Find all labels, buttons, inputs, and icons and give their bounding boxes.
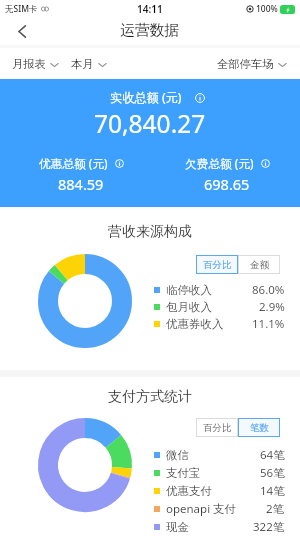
- staticText: 包月收入: [166, 300, 212, 314]
- staticText: 2.9%: [259, 299, 285, 315]
- staticText: 70,840.27: [94, 107, 206, 140]
- button[interactable]: 百分比: [196, 418, 238, 437]
- staticText: 14笔: [260, 483, 285, 499]
- button[interactable]: 包月收入: [154, 298, 285, 315]
- button[interactable]: 优惠券收入: [154, 315, 285, 332]
- staticText: 百分比: [203, 259, 232, 271]
- button[interactable]: 本月: [71, 51, 107, 77]
- staticText: 本月: [71, 57, 94, 71]
- button[interactable]: 金额: [238, 255, 280, 274]
- button[interactable]: 优惠支付: [154, 482, 285, 500]
- staticText: 百分比: [203, 422, 232, 434]
- button[interactable]: 微信: [154, 446, 285, 464]
- staticText: 现金: [166, 520, 189, 534]
- button[interactable]: 返回: [0, 17, 44, 45]
- staticText: 欠费总额 (元): [185, 155, 254, 171]
- staticText: 优惠券收入: [166, 317, 224, 331]
- button[interactable]: 月报表: [12, 51, 59, 77]
- button[interactable]: 百分比: [196, 255, 238, 274]
- button[interactable]: 临停收入: [154, 281, 285, 298]
- staticText: 100%: [256, 3, 278, 15]
- staticText: 2笔: [266, 501, 285, 517]
- staticText: 实收总额 (元): [110, 89, 182, 106]
- staticText: 金额: [250, 259, 269, 271]
- staticText: 笔数: [250, 422, 269, 434]
- staticText: 优惠支付: [166, 484, 212, 498]
- staticText: 11.1%: [252, 316, 285, 332]
- staticText: 支付宝: [166, 466, 201, 480]
- staticText: 全部停车场: [217, 57, 274, 71]
- staticText: 86.0%: [252, 282, 285, 298]
- staticText: 临停收入: [166, 283, 212, 297]
- staticText: 支付方式统计: [108, 388, 192, 406]
- button[interactable]: 全部停车场: [217, 51, 287, 77]
- staticText: 698.65: [204, 174, 250, 194]
- staticText: 营收来源构成: [108, 223, 192, 241]
- staticText: 64笔: [260, 447, 285, 463]
- staticText: 无SIM卡: [5, 3, 38, 15]
- staticText: 56笔: [260, 465, 285, 481]
- staticText: 322笔: [253, 519, 285, 535]
- staticText: 运营数据: [120, 21, 180, 40]
- staticText: openapi 支付: [166, 501, 237, 517]
- staticText: 月报表: [12, 57, 46, 71]
- button[interactable]: 笔数: [238, 418, 280, 437]
- button[interactable]: 现金: [154, 518, 285, 536]
- staticText: 14:11: [137, 2, 163, 16]
- button[interactable]: 支付宝: [154, 464, 285, 482]
- button[interactable]: openapi 支付: [154, 500, 285, 518]
- staticText: 优惠总额 (元): [39, 155, 108, 171]
- staticText: 884.59: [58, 174, 104, 194]
- staticText: 微信: [166, 448, 189, 462]
